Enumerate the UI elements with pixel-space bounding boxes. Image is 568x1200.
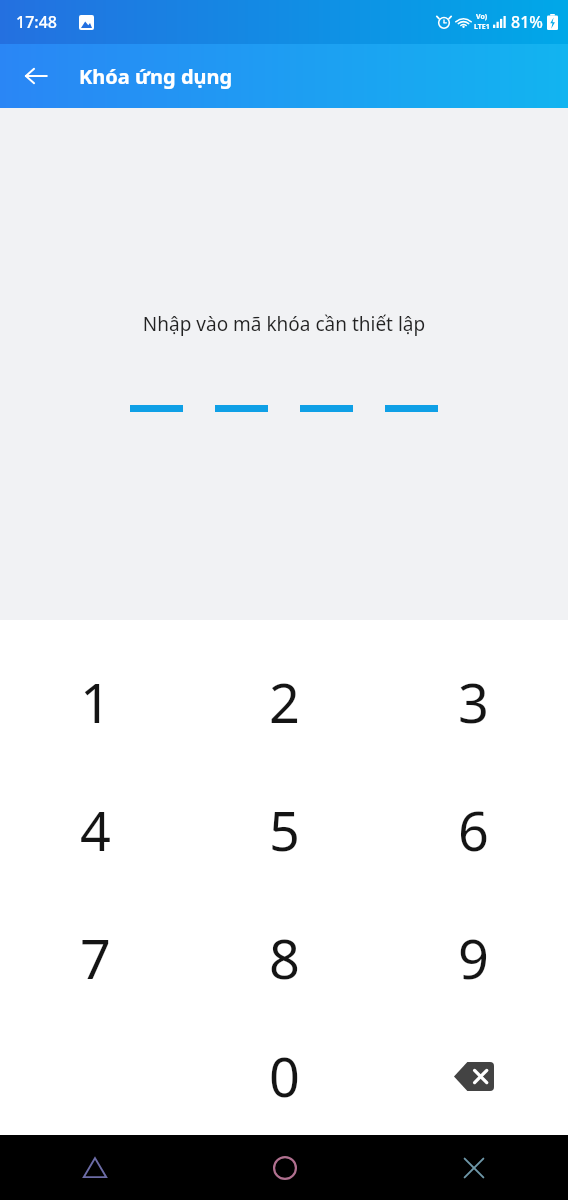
- staticText: 7: [80, 921, 111, 995]
- button[interactable]: 8: [190, 894, 379, 1022]
- button[interactable]: 0: [190, 1022, 379, 1130]
- button[interactable]: Home: [190, 1135, 379, 1200]
- staticText: 2: [269, 665, 300, 739]
- staticText: 0: [269, 1039, 300, 1113]
- staticText: LTE1: [474, 22, 490, 32]
- button[interactable]: 4: [0, 766, 190, 894]
- button[interactable]: 9: [379, 894, 568, 1022]
- staticText: Khóa ứng dụng: [79, 63, 233, 90]
- button[interactable]: 2: [190, 638, 379, 766]
- staticText: 9: [458, 921, 489, 995]
- staticText: 6: [458, 793, 489, 867]
- button[interactable]: 6: [379, 766, 568, 894]
- button[interactable]: Quay lại: [14, 54, 58, 98]
- other: Xóa: [454, 1062, 494, 1091]
- button[interactable]: 1: [0, 638, 190, 766]
- staticText: Vo): [476, 12, 488, 22]
- staticText: 1: [80, 665, 111, 739]
- button[interactable]: 3: [379, 638, 568, 766]
- staticText: 8: [269, 921, 300, 995]
- staticText: 5: [269, 793, 300, 867]
- button[interactable]: 7: [0, 894, 190, 1022]
- button[interactable]: Recents: [0, 1135, 190, 1200]
- staticText: 17:48: [16, 11, 57, 33]
- button[interactable]: Back: [379, 1135, 568, 1200]
- button[interactable]: Xóa: [379, 1022, 568, 1130]
- staticText: 4: [80, 793, 111, 867]
- button[interactable]: 5: [190, 766, 379, 894]
- staticText: Nhập vào mã khóa cần thiết lập: [0, 311, 568, 337]
- staticText: 3: [458, 665, 489, 739]
- staticText: 81%: [511, 11, 543, 33]
